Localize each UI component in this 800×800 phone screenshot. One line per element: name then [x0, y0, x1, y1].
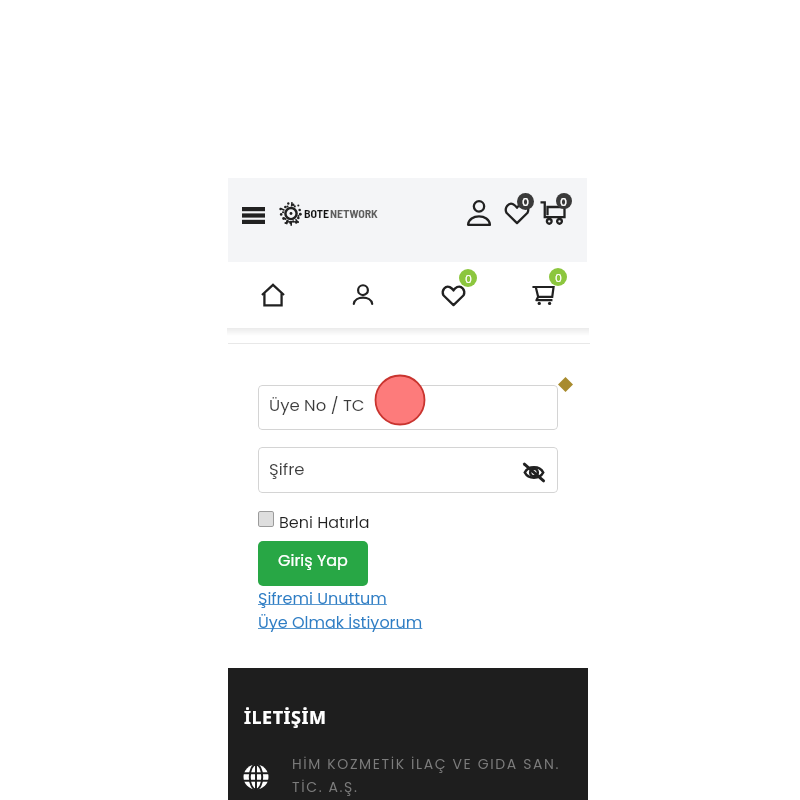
- staticText: HİM KOZMETİK İLAÇ VE GIDA SAN. TİC. A.Ş.: [292, 754, 560, 796]
- button[interactable]: Menu: [238, 200, 268, 230]
- button[interactable]: Üye No / TC: [258, 385, 558, 430]
- button[interactable]: Home: [250, 272, 295, 317]
- staticText: 0: [465, 271, 472, 286]
- staticText: 0: [522, 194, 530, 209]
- staticText: Şifremi Unuttum: [258, 587, 387, 609]
- staticText: Giriş Yap: [278, 549, 348, 571]
- button[interactable]: Show password: [520, 458, 548, 486]
- staticText: BOTE: [304, 206, 330, 220]
- button[interactable]: Account: [462, 196, 495, 229]
- button[interactable]: Profile: [340, 272, 385, 317]
- staticText: 0: [555, 270, 562, 285]
- button[interactable]: Cart: [524, 266, 566, 308]
- staticText: Üye No / TC: [269, 394, 365, 417]
- button[interactable]: Favourites: [500, 190, 536, 226]
- staticText: Beni Hatırla: [279, 511, 370, 533]
- staticText: NETWORK: [330, 206, 378, 220]
- staticText: Üye Olmak İstiyorum: [258, 611, 423, 633]
- button[interactable]: Bote Network home: [278, 200, 378, 226]
- button[interactable]: Şifre: [258, 447, 558, 493]
- staticText: 0: [560, 194, 568, 209]
- button[interactable]: Beni Hatırla: [258, 508, 370, 530]
- button[interactable]: Üye Olmak İstiyorum: [258, 611, 423, 633]
- button[interactable]: Cart: [537, 190, 573, 226]
- button[interactable]: Giriş Yap: [258, 541, 368, 586]
- staticText: İLETİŞİM: [244, 705, 327, 730]
- button[interactable]: Favourites: [434, 266, 476, 308]
- staticText: Şifre: [269, 458, 305, 481]
- button[interactable]: Şifremi Unuttum: [258, 587, 387, 609]
